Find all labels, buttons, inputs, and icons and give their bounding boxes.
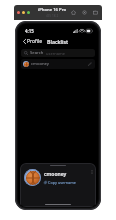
- button[interactable]: Search: [21, 49, 95, 57]
- staticText: Copy username: [48, 180, 76, 185]
- staticText: iPhone 16 Pro: [38, 7, 66, 13]
- staticText: 4:15: [25, 28, 34, 34]
- button[interactable]: More options: [88, 168, 95, 175]
- staticText: cmooney: [44, 171, 67, 178]
- staticText: Blacklist: [47, 38, 69, 45]
- staticText: Profile: [27, 38, 43, 45]
- button[interactable]: cmooney: [24, 169, 92, 186]
- button[interactable]: cmooney: [21, 59, 95, 69]
- button[interactable]: Settings: [81, 9, 88, 16]
- button[interactable]: Home: [70, 9, 77, 16]
- staticText: iOS 18.2: [46, 14, 59, 18]
- button[interactable]: Zoom: [27, 11, 30, 14]
- button[interactable]: Minimize: [22, 11, 25, 14]
- staticText: cmooney: [31, 61, 49, 67]
- staticText: username: [46, 51, 66, 56]
- button[interactable]: Screenshot: [92, 9, 99, 16]
- button[interactable]: Profile: [21, 37, 45, 46]
- button[interactable]: Close: [17, 11, 20, 14]
- button[interactable]: Edit: [87, 61, 93, 67]
- staticText: Search: [30, 50, 44, 56]
